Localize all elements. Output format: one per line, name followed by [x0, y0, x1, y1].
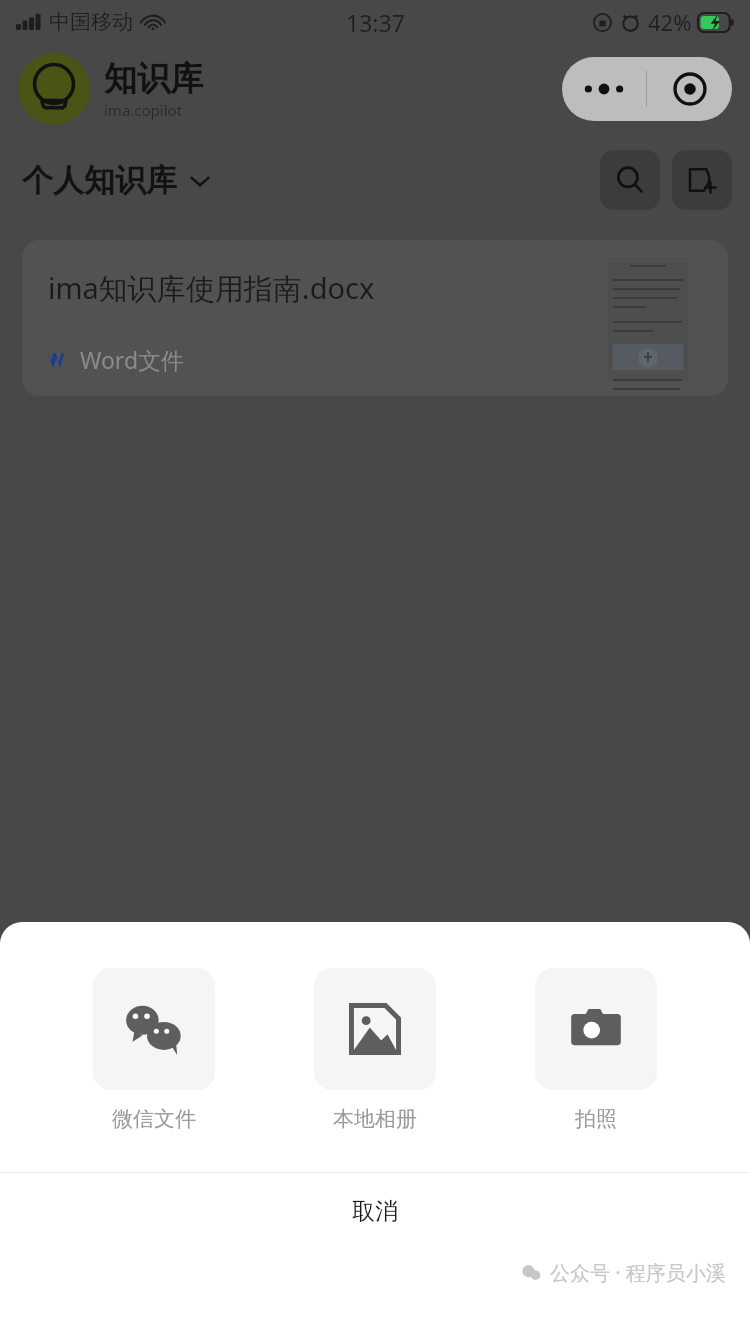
button[interactable]: Local album: [308, 968, 442, 1132]
staticText: 取消: [352, 1197, 398, 1226]
other: WeChat files: [125, 1000, 183, 1058]
staticText: 个人知识库: [22, 161, 177, 200]
staticText: 中国移动: [49, 9, 133, 35]
staticText: ima知识库使用指南.docx: [48, 268, 375, 308]
other: Take photo: [569, 1002, 623, 1056]
staticText: 拍照: [575, 1106, 617, 1132]
button[interactable]: Add document: [672, 150, 732, 210]
button[interactable]: ima知识库使用指南.docx: [22, 240, 728, 396]
staticText: ima.copilot: [104, 100, 183, 120]
staticText: 公众号 · 程序员小溪: [550, 1259, 726, 1286]
button[interactable]: Take photo: [529, 968, 663, 1132]
staticText: 42%: [648, 7, 692, 37]
button[interactable]: Search: [600, 150, 660, 210]
staticText: 13:37: [346, 7, 405, 38]
button[interactable]: 取消: [0, 1173, 750, 1249]
staticText: 微信文件: [112, 1106, 196, 1132]
button[interactable]: WeChat files: [87, 968, 221, 1132]
staticText: 本地相册: [333, 1106, 417, 1132]
staticText: 知识库: [104, 58, 203, 100]
other: Local album: [349, 1003, 401, 1055]
button[interactable]: More: [562, 57, 646, 121]
staticText: Word文件: [80, 344, 185, 375]
button[interactable]: 个人知识库: [22, 161, 213, 200]
button[interactable]: Close: [647, 57, 732, 121]
